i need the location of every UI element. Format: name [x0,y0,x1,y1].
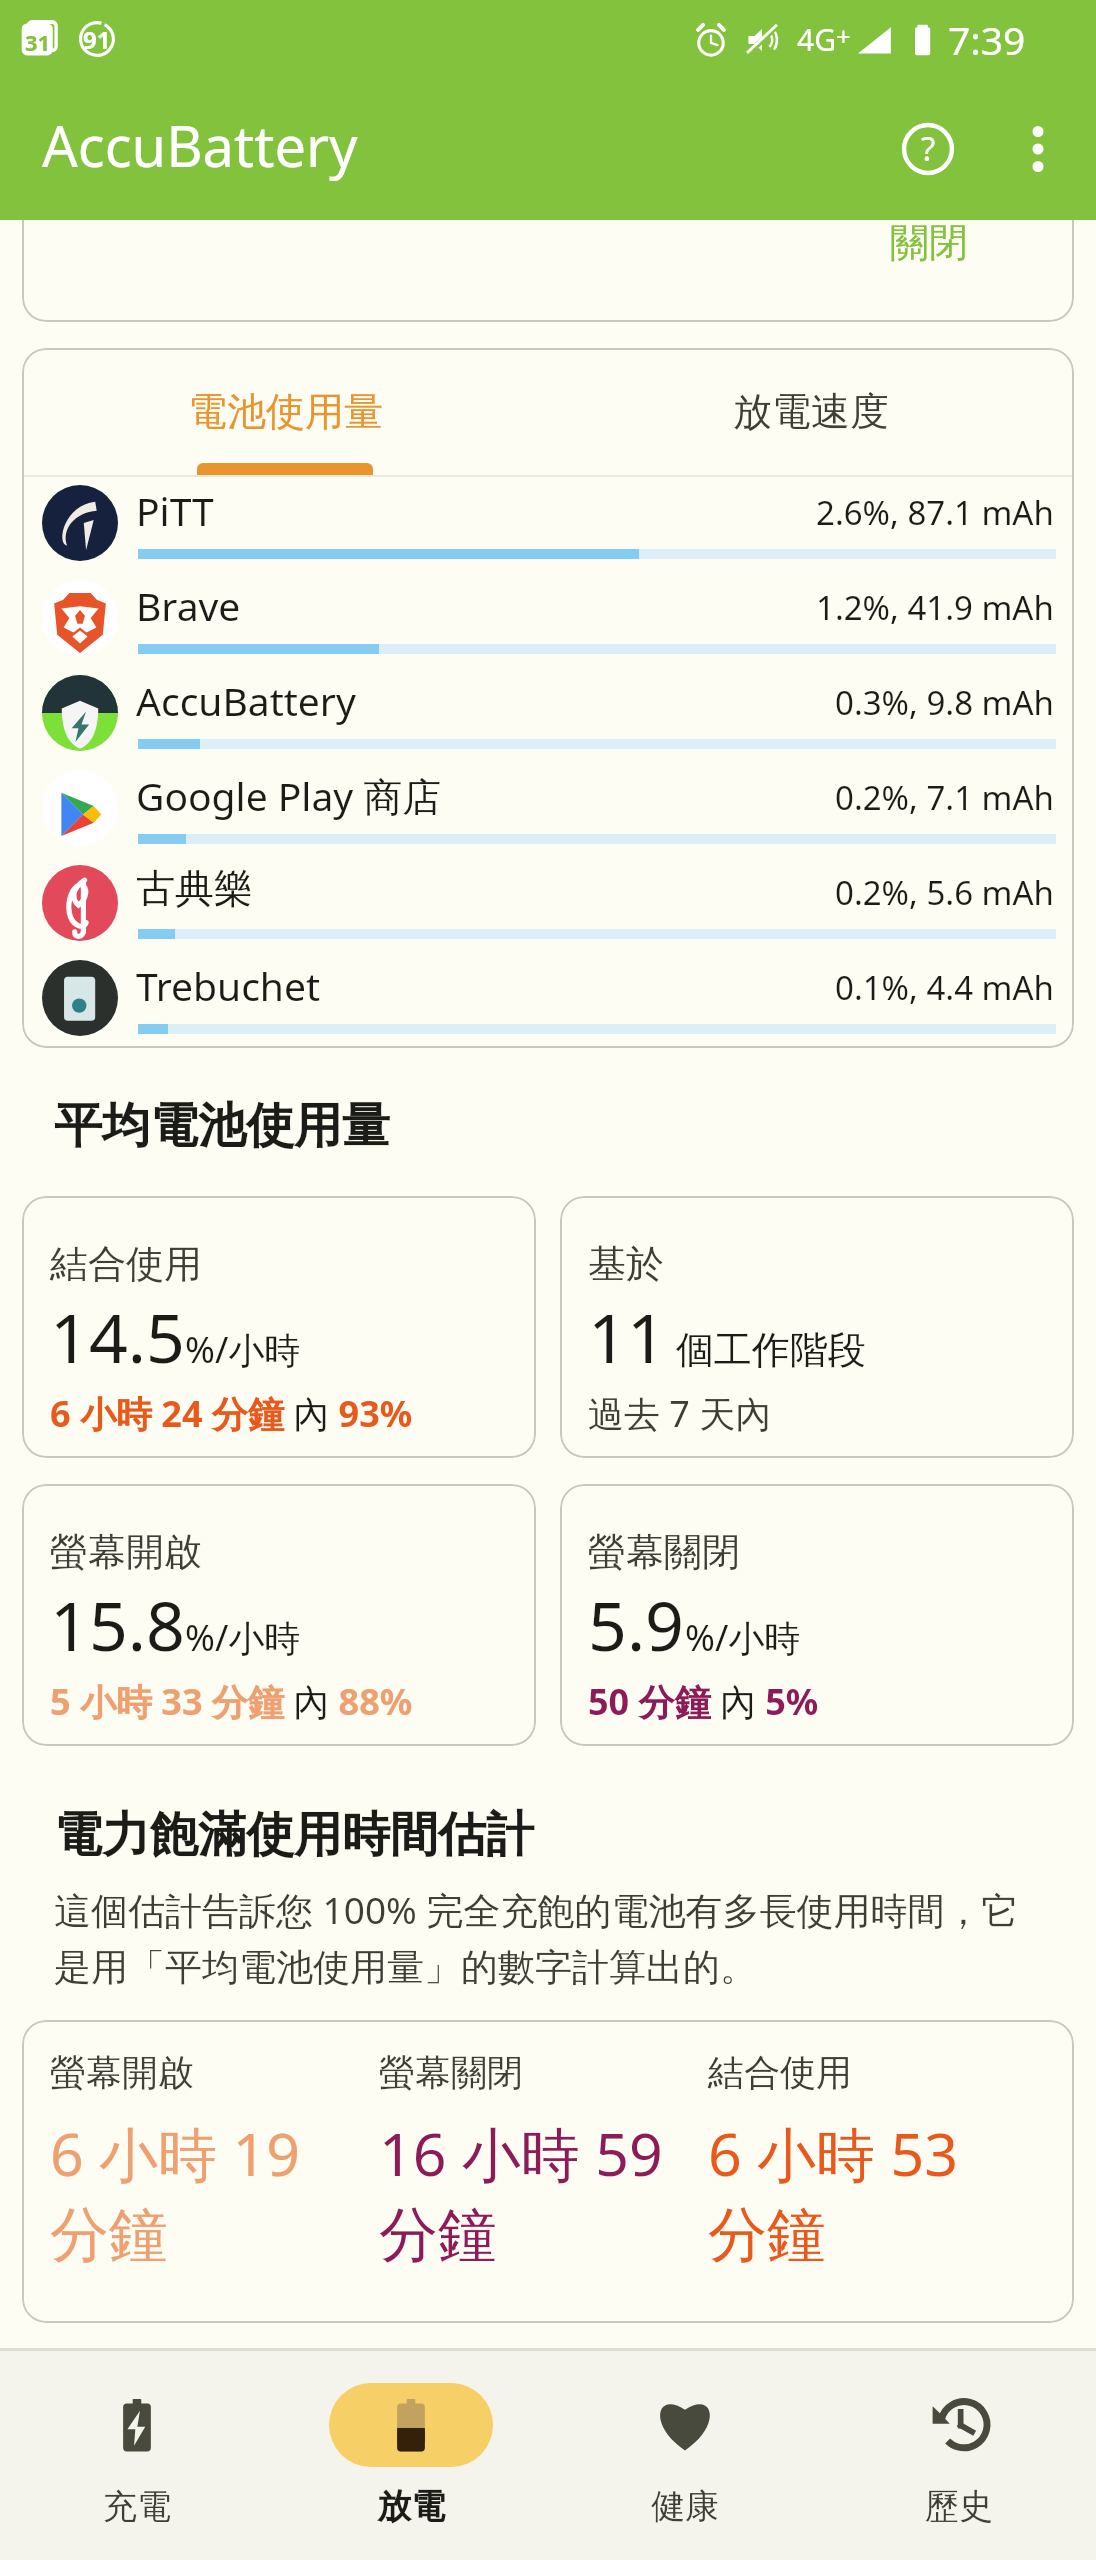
staticText: AccuBattery [42,107,358,183]
staticText: 過去 7 天內 [588,1389,772,1438]
staticText: 健康 [651,2485,719,2528]
button[interactable]: Brave [22,572,1074,667]
staticText: 14.5 [50,1290,185,1383]
button[interactable]: AccuBattery [22,667,1074,762]
staticText: 歷史 [925,2485,993,2528]
button[interactable]: 充電 [0,2351,274,2560]
staticText: 螢幕關閉 [588,1528,740,1576]
staticText: 91 [83,23,111,56]
button[interactable]: PiTT [22,477,1074,572]
staticText: 6 小時 53 分鐘 [708,2113,1005,2273]
staticText: AccuBattery [136,674,356,727]
button[interactable]: More options [983,94,1093,204]
button[interactable]: 螢幕關閉 [560,1484,1074,1746]
button[interactable]: 健康 [548,2351,822,2560]
staticText: 結合使用 [708,2050,852,2095]
staticText: 基於 [588,1240,664,1288]
button[interactable]: 放電 [274,2351,548,2560]
staticText: %/小時 [685,1613,801,1662]
staticText: Trebuchet [136,959,321,1012]
button[interactable]: 關閉 [22,160,1074,322]
staticText: 16 小時 59 分鐘 [379,2113,676,2273]
staticText: 電力飽滿使用時間估計 [54,1805,534,1865]
button[interactable]: Google Play 商店 [22,762,1074,857]
button[interactable]: Help [873,94,983,204]
staticText: 0.1%, 4.4 mAh [835,965,1054,1010]
staticText: 電池使用量 [188,387,383,436]
staticText: 放電速度 [733,387,889,436]
button[interactable]: 基於 [560,1196,1074,1458]
button[interactable]: Trebuchet [22,952,1074,1047]
staticText: %/小時 [185,1613,301,1662]
staticText: %/小時 [185,1325,301,1374]
staticText: 15.8 [50,1578,185,1671]
staticText: 螢幕開啟 [50,1528,202,1576]
staticText: 充電 [103,2485,171,2528]
staticText: 5.9 [588,1578,685,1671]
staticText: ? [921,126,936,171]
button[interactable]: 結合使用 [22,1196,536,1458]
staticText: 0.2%, 7.1 mAh [835,775,1054,820]
staticText: 50 分鐘 內 5% [588,1677,819,1726]
staticText: 這個估計告訴您 100% 完全充飽的電池有多長使用時間，它是用「平均電池使用量」… [54,1884,1029,1991]
staticText: 1.2%, 41.9 mAh [816,585,1054,630]
staticText: PiTT [136,484,214,537]
staticText: 平均電池使用量 [54,1096,390,1156]
button[interactable]: 歷史 [822,2351,1096,2560]
staticText: 0.2%, 5.6 mAh [835,870,1054,915]
staticText: 關閉 [890,218,968,267]
staticText: 0.3%, 9.8 mAh [835,680,1054,725]
button[interactable]: 放電速度 [548,348,1074,475]
staticText: 7:39 [948,13,1026,66]
staticText: 4G [797,19,836,60]
staticText: Brave [136,579,241,632]
staticText: 2.6%, 87.1 mAh [816,490,1054,535]
button[interactable]: 螢幕開啟 [22,2020,1074,2323]
staticText: 放電 [377,2485,445,2528]
staticText: 個工作階段 [666,1322,866,1374]
staticText: 古典樂 [136,864,253,913]
staticText: 11 [588,1290,666,1383]
staticText: 31 [25,27,51,57]
button[interactable]: 古典樂 [22,857,1074,952]
staticText: 6 小時 24 分鐘 內 93% [50,1389,413,1438]
button[interactable]: 螢幕開啟 [22,1484,536,1746]
staticText: 結合使用 [50,1240,202,1288]
staticText: 6 小時 19 分鐘 [50,2113,347,2273]
staticText: 螢幕關閉 [379,2050,523,2095]
button[interactable]: 電池使用量 [22,348,548,475]
staticText: + [836,18,851,53]
staticText: 5 小時 33 分鐘 內 88% [50,1677,413,1726]
staticText: 螢幕開啟 [50,2050,194,2095]
staticText: Google Play 商店 [136,769,442,822]
